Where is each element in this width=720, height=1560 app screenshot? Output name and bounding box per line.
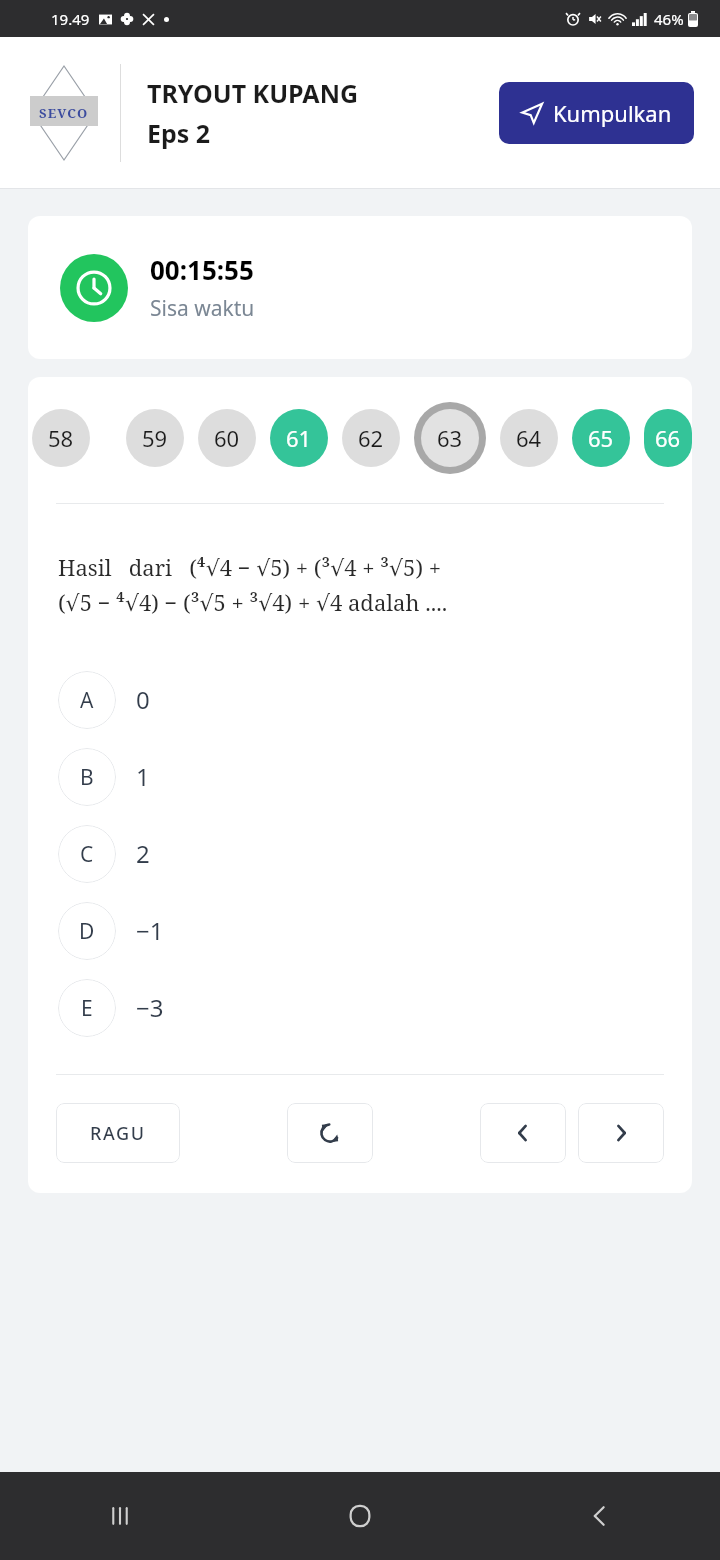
button[interactable]: A — [28, 661, 692, 738]
button[interactable]: Kumpulkan — [499, 82, 694, 144]
staticText: Hasil dari (⁴√4 − √5) + (³√4 + ³√5) + — [58, 552, 442, 582]
staticText: TRYOUT KUPANG — [147, 76, 359, 110]
button[interactable]: Recent apps — [0, 1472, 240, 1560]
button[interactable]: 00:15:55 — [28, 216, 692, 359]
staticText: Kumpulkan — [553, 98, 672, 128]
staticText: 1 — [136, 760, 150, 793]
button[interactable]: 61 — [270, 409, 328, 467]
staticText: 2 — [136, 837, 150, 870]
button[interactable]: RAGU — [56, 1103, 180, 1163]
staticText: 46% — [654, 9, 684, 29]
button[interactable]: 58 — [32, 409, 90, 467]
staticText: 0 — [136, 683, 150, 716]
button[interactable]: C — [28, 815, 692, 892]
staticText: 66 — [655, 423, 681, 453]
button[interactable]: E — [28, 969, 692, 1046]
button[interactable]: B — [28, 738, 692, 815]
staticText: 65 — [588, 423, 614, 453]
staticText: A — [80, 686, 94, 715]
staticText: −1 — [136, 914, 164, 947]
staticText: D — [79, 917, 95, 946]
button[interactable]: Next question — [578, 1103, 664, 1163]
button[interactable]: 59 — [126, 409, 184, 467]
staticText: 19.49 — [51, 9, 90, 29]
staticText: 62 — [358, 423, 384, 453]
button[interactable]: Back — [480, 1472, 720, 1560]
staticText: 60 — [214, 423, 240, 453]
button[interactable]: Previous question — [480, 1103, 566, 1163]
staticText: RAGU — [90, 1121, 146, 1146]
button[interactable]: 60 — [198, 409, 256, 467]
button[interactable]: 65 — [572, 409, 630, 467]
staticText: (√5 − ⁴√4) − (³√5 + ³√4) + √4 adalah ...… — [58, 587, 448, 617]
button[interactable]: 62 — [342, 409, 400, 467]
staticText: 00:15:55 — [150, 252, 254, 287]
staticText: 59 — [142, 423, 168, 453]
staticText: −3 — [136, 991, 164, 1024]
button[interactable]: Reset answer — [287, 1103, 373, 1163]
staticText: E — [81, 994, 93, 1023]
staticText: Eps 2 — [147, 116, 211, 150]
staticText: SEVCO — [39, 104, 89, 122]
staticText: Sisa waktu — [150, 294, 255, 323]
button[interactable]: Home — [240, 1472, 480, 1560]
staticText: B — [80, 763, 94, 792]
staticText: 61 — [286, 423, 312, 453]
button[interactable]: 64 — [500, 409, 558, 467]
button[interactable]: 66 — [644, 409, 692, 467]
button[interactable]: D — [28, 892, 692, 969]
staticText: C — [80, 840, 94, 869]
staticText: 58 — [48, 423, 74, 453]
staticText: 64 — [516, 423, 542, 453]
staticText: 63 — [437, 423, 463, 453]
button[interactable]: 63 — [414, 402, 486, 474]
